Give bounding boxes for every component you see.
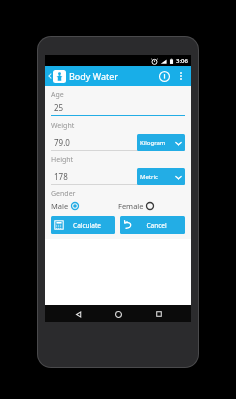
button[interactable]: More options [174,69,188,83]
staticText: cm [173,173,183,182]
staticText: 3:06 [176,57,188,65]
staticText: 25 [54,102,64,113]
staticText: Weight [51,121,75,131]
staticText: Female [118,201,144,211]
button[interactable]: Male [51,201,118,211]
button[interactable]: Back [70,306,86,322]
button[interactable]: Female [118,201,185,211]
button[interactable]: Cancel [120,216,185,234]
button[interactable]: Home [110,306,126,322]
button[interactable]: Metric [137,168,185,185]
button[interactable]: Info [156,68,172,84]
staticText: Gender [51,189,76,199]
staticText: 178 [54,171,68,182]
staticText: Calculate [73,221,101,230]
staticText: Height [51,155,74,165]
staticText: kg [175,139,183,148]
staticText: Male [51,201,69,211]
button[interactable]: Recent apps [151,306,167,322]
staticText: Kilogram [140,139,166,147]
staticText: Age [51,90,64,100]
staticText: Metric [140,173,158,181]
staticText: 79.0 [54,137,70,148]
staticText: Body Water [69,70,119,82]
button[interactable]: Calculate [51,216,115,234]
button[interactable]: Kilogram [137,134,185,151]
staticText: Cancel [146,221,167,230]
